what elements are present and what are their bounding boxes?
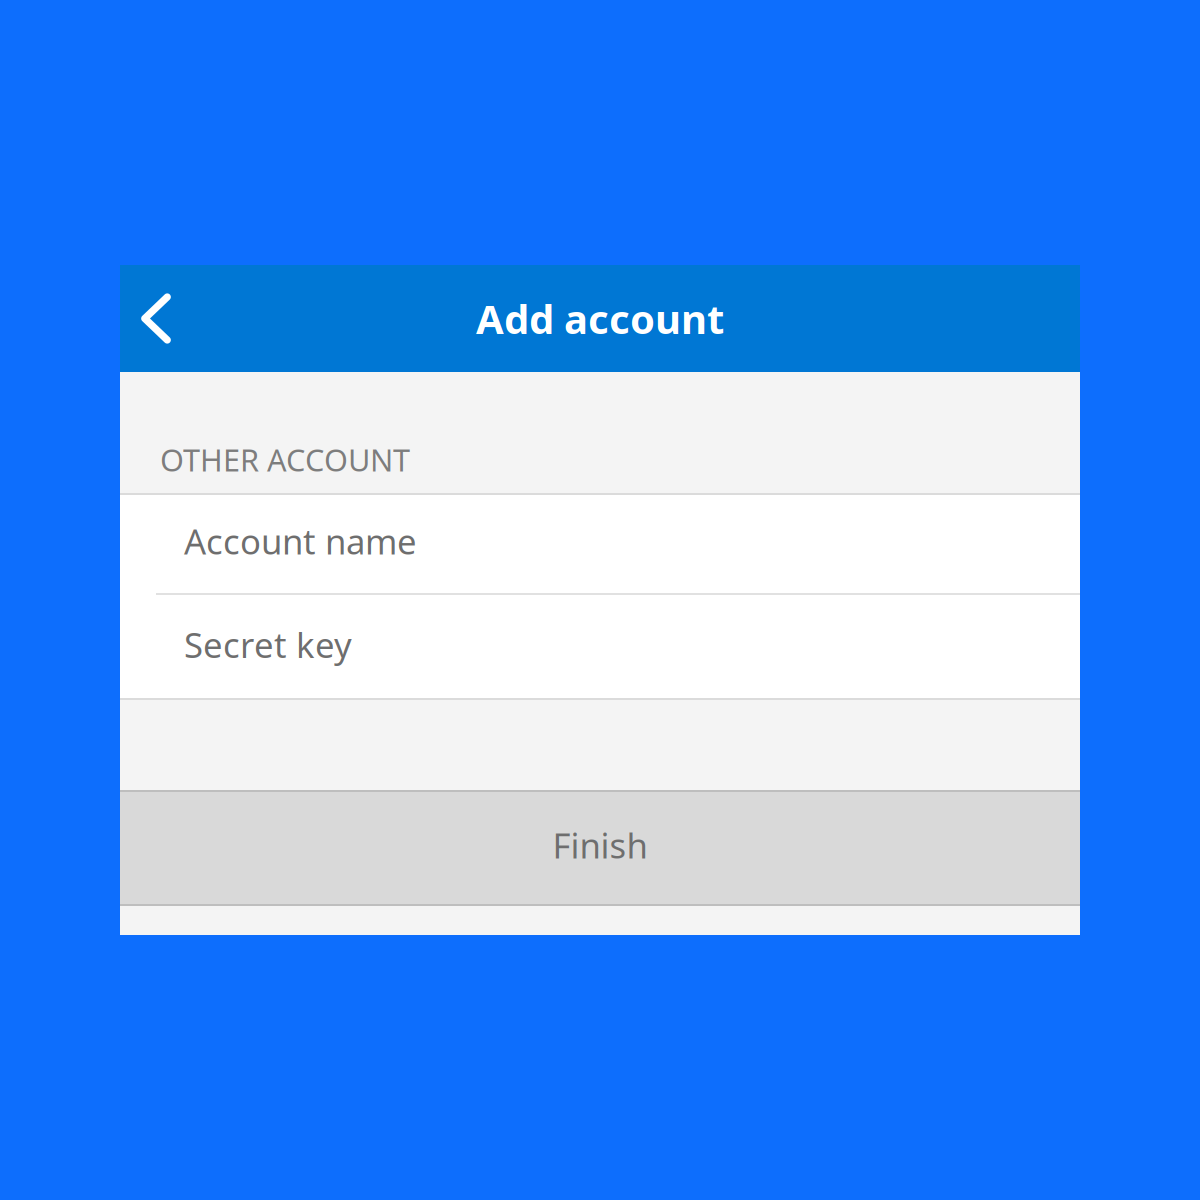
button[interactable]: Secret key [120, 595, 1080, 700]
staticText: OTHER ACCOUNT [160, 439, 410, 480]
staticText: Secret key [184, 621, 352, 667]
button[interactable]: Back [120, 265, 192, 372]
button[interactable]: Finish [120, 790, 1080, 906]
staticText: Finish [552, 822, 647, 868]
staticText: Add account [476, 292, 724, 345]
button[interactable]: Account name [120, 493, 1080, 595]
staticText: Account name [184, 518, 417, 564]
